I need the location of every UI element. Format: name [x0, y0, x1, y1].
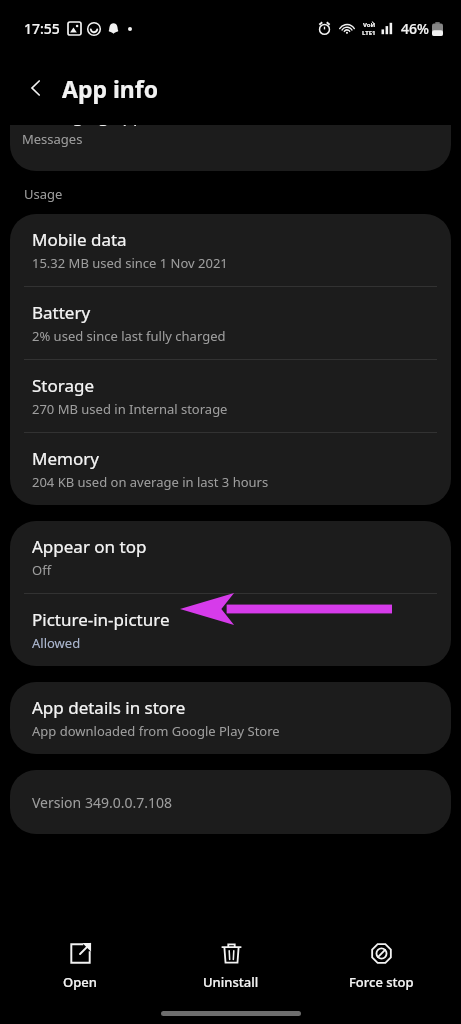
staticText: Allowed — [32, 634, 81, 652]
button[interactable]: Appear on top — [10, 521, 451, 593]
staticText: Memory — [32, 447, 99, 470]
staticText: Messages — [22, 130, 83, 148]
staticText: Appear on top — [32, 535, 147, 558]
button[interactable]: App details in store — [10, 682, 451, 754]
button[interactable]: Force stop — [311, 936, 451, 997]
staticText: Messaging app — [22, 125, 144, 127]
staticText: 46% — [401, 19, 429, 38]
button[interactable]: Battery — [10, 287, 451, 359]
staticText: VoЍ — [363, 21, 376, 29]
button[interactable]: Messaging app — [10, 125, 451, 171]
staticText: Storage — [32, 374, 95, 397]
staticText: LTE1 — [362, 29, 376, 37]
staticText: App downloaded from Google Play Store — [32, 722, 280, 740]
button[interactable]: Mobile data — [10, 214, 451, 286]
button[interactable]: Back — [14, 66, 58, 110]
staticText: 15.32 MB used since 1 Nov 2021 — [32, 254, 228, 272]
button[interactable]: Picture-in-picture — [10, 594, 451, 666]
button[interactable]: Open — [10, 936, 150, 997]
staticText: Open — [63, 973, 97, 991]
button[interactable]: Storage — [10, 360, 451, 432]
other: Uninstall — [220, 942, 243, 965]
other: Force stop — [370, 942, 393, 965]
staticText: Mobile data — [32, 228, 127, 251]
staticText: Usage — [24, 185, 63, 203]
staticText: Force stop — [349, 973, 414, 991]
staticText: Battery — [32, 301, 91, 324]
staticText: 17:55 — [24, 19, 60, 38]
staticText: 270 MB used in Internal storage — [32, 400, 228, 418]
button[interactable]: Uninstall — [161, 936, 301, 997]
button[interactable]: Memory — [10, 433, 451, 505]
other: Open — [69, 942, 92, 965]
staticText: Version 349.0.0.7.108 — [32, 793, 172, 812]
staticText: Uninstall — [203, 973, 259, 991]
staticText: Off — [32, 561, 52, 579]
staticText: 204 KB used on average in last 3 hours — [32, 473, 269, 491]
staticText: App info — [62, 73, 159, 104]
staticText: 2% used since last fully charged — [32, 327, 226, 345]
staticText: App details in store — [32, 696, 186, 719]
staticText: Picture-in-picture — [32, 608, 170, 631]
